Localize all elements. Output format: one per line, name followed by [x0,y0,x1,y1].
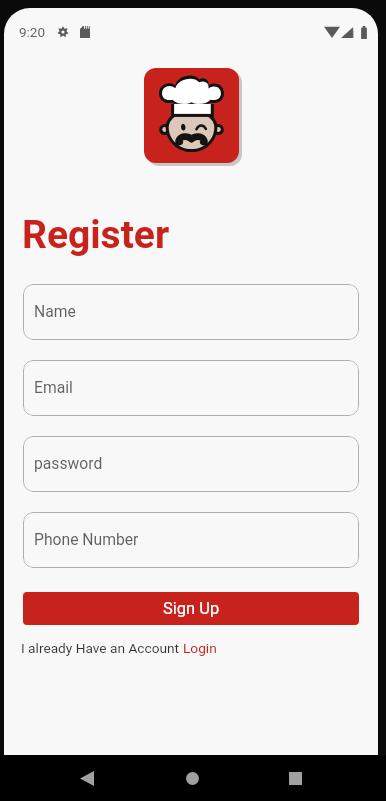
staticText: Email [34,378,73,396]
staticText: I already Have an Account [21,640,183,656]
button[interactable]: Recent apps [275,758,315,798]
button[interactable]: Login [183,640,217,656]
staticText: Register [22,212,170,258]
staticText: 9:20 [19,24,46,40]
button[interactable]: Sign Up [23,592,359,625]
staticText: password [34,454,103,472]
button[interactable]: Home [172,758,212,798]
button[interactable]: Phone Number [23,512,359,568]
button[interactable]: Email [23,360,359,416]
button[interactable]: Back [67,758,107,798]
button[interactable]: Name [23,284,359,340]
staticText: Sign Up [163,599,220,618]
staticText: Name [34,302,76,320]
staticText: Phone Number [34,530,139,548]
button[interactable]: password [23,436,359,492]
